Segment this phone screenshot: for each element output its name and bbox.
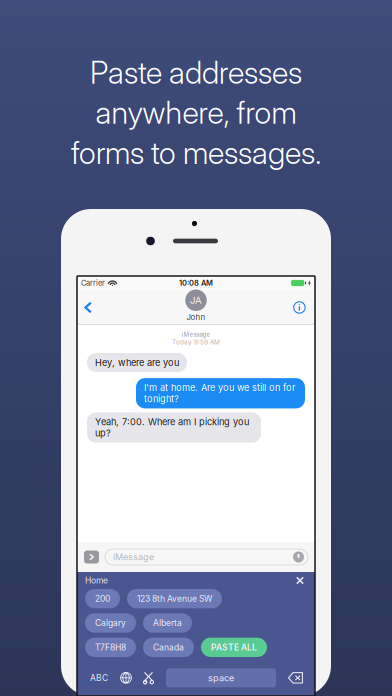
staticText: anywhere, from — [95, 94, 296, 131]
button[interactable]: Close — [293, 573, 307, 587]
button[interactable]: space — [166, 668, 276, 687]
staticText: Canada — [153, 642, 184, 652]
staticText: Calgary — [95, 618, 126, 628]
staticText: Yeah, 7:00. Where am I picking you up? — [95, 416, 249, 439]
staticText: 10:08 AM — [179, 278, 213, 287]
button[interactable]: 123 8th Avenue SW — [127, 589, 222, 608]
staticText: ABC — [90, 673, 108, 683]
button[interactable]: T7F8H8 — [85, 638, 136, 657]
staticText: iMessage — [181, 331, 210, 338]
staticText: PASTE ALL — [211, 642, 257, 652]
staticText: John — [186, 312, 205, 322]
button[interactable]: Switch keyboard — [114, 668, 138, 688]
staticText: Alberta — [153, 618, 182, 628]
staticText: Carrier — [81, 278, 105, 287]
staticText: 123 8th Avenue SW — [137, 593, 212, 604]
staticText: space — [208, 672, 234, 683]
staticText: T7F8H8 — [95, 642, 126, 652]
button[interactable]: Canada — [143, 638, 194, 657]
button[interactable]: Alberta — [143, 613, 192, 633]
staticText: JA — [190, 294, 202, 306]
button[interactable]: Delete — [283, 668, 308, 688]
button[interactable]: Details — [283, 292, 315, 323]
staticText: I'm at home. Are you we still on for ton… — [144, 382, 295, 404]
staticText: 200 — [95, 593, 110, 604]
button[interactable]: ABC — [84, 668, 114, 688]
button[interactable]: 200 — [85, 589, 120, 608]
staticText: iMessage — [113, 551, 154, 562]
staticText: Hey, where are you — [95, 357, 179, 368]
staticText: Home — [85, 575, 108, 586]
button[interactable]: Apps — [84, 550, 99, 563]
button[interactable]: PASTE ALL — [201, 638, 267, 657]
button[interactable]: Back — [77, 292, 102, 322]
button[interactable]: Calgary — [85, 613, 136, 633]
staticText: Paste addresses — [90, 54, 302, 91]
staticText: forms to messages. — [71, 134, 321, 171]
button[interactable]: Cut — [138, 669, 159, 687]
button[interactable]: John — [185, 289, 207, 325]
staticText: Today 9:59 AM — [172, 338, 220, 346]
